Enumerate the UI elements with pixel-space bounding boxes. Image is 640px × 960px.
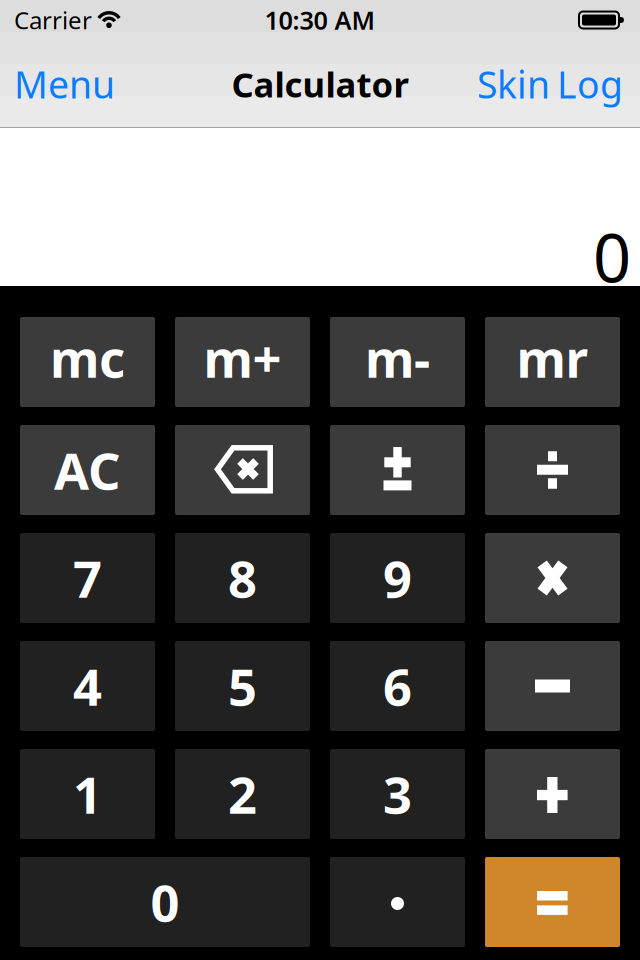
button[interactable]: mr [485, 317, 620, 407]
button[interactable] [485, 857, 620, 947]
button[interactable]: mc [20, 317, 155, 407]
button[interactable]: 5 [175, 641, 310, 731]
staticText: AC [54, 436, 121, 504]
staticText: 7 [73, 544, 102, 612]
button[interactable]: 0 [20, 857, 310, 947]
staticText: 0 [150, 868, 179, 936]
button[interactable]: Skin [477, 59, 550, 109]
button[interactable]: 3 [330, 749, 465, 839]
button[interactable] [485, 641, 620, 731]
staticText: 1 [73, 760, 102, 828]
staticText: Calculator [231, 61, 408, 107]
button[interactable]: 9 [330, 533, 465, 623]
button[interactable] [485, 749, 620, 839]
staticText: 10:30 AM [264, 3, 375, 37]
staticText: m- [365, 324, 430, 392]
staticText: 0 [593, 212, 631, 301]
staticText: mc [50, 324, 125, 392]
button[interactable] [330, 425, 465, 515]
button[interactable] [175, 425, 310, 515]
staticText: m+ [203, 324, 281, 392]
staticText: 9 [383, 544, 412, 612]
button[interactable]: m+ [175, 317, 310, 407]
staticText: Skin [477, 59, 550, 109]
staticText: 6 [383, 652, 412, 720]
button[interactable]: 2 [175, 749, 310, 839]
staticText: Carrier [14, 4, 92, 36]
button[interactable]: Menu [14, 59, 115, 109]
staticText: 8 [228, 544, 257, 612]
staticText: 3 [383, 760, 412, 828]
button[interactable]: 6 [330, 641, 465, 731]
staticText: 4 [73, 652, 102, 720]
button[interactable] [330, 857, 465, 947]
staticText: 2 [228, 760, 257, 828]
button[interactable]: Log [557, 59, 623, 109]
staticText: Log [557, 59, 623, 109]
button[interactable]: 4 [20, 641, 155, 731]
button[interactable]: 1 [20, 749, 155, 839]
button[interactable] [485, 425, 620, 515]
staticText: 5 [228, 652, 257, 720]
button[interactable]: AC [20, 425, 155, 515]
button[interactable]: m- [330, 317, 465, 407]
button[interactable]: 8 [175, 533, 310, 623]
button[interactable] [485, 533, 620, 623]
staticText: mr [516, 324, 588, 392]
staticText: Menu [14, 59, 115, 109]
button[interactable]: 7 [20, 533, 155, 623]
